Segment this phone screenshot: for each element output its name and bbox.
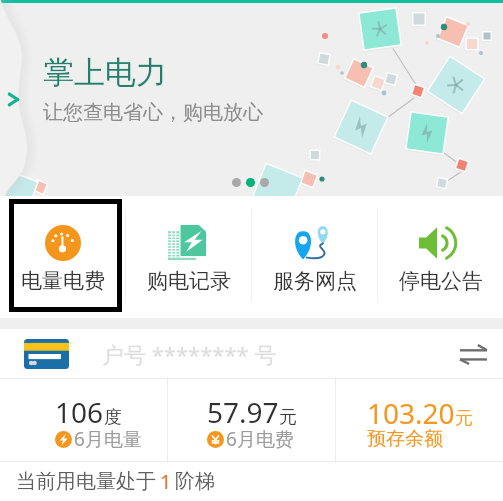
- staticText: 103.20: [367, 394, 455, 432]
- staticText: 让您查电省心，购电放心: [43, 100, 263, 125]
- button[interactable]: 户号 ******** 号: [0, 329, 503, 378]
- staticText: 阶梯: [175, 469, 215, 494]
- staticText: 元: [455, 407, 473, 430]
- staticText: 服务网点: [273, 268, 357, 294]
- staticText: 电量电费: [21, 268, 105, 294]
- button[interactable]: 打开侧边菜单: [0, 3, 44, 196]
- staticText: 57.97: [207, 393, 279, 431]
- button[interactable]: 电量电费: [0, 196, 125, 318]
- staticText: 购电记录: [147, 268, 231, 294]
- staticText: 6月电量: [74, 426, 142, 452]
- staticText: 6月电费: [226, 426, 294, 452]
- staticText: 户号 ******** 号: [102, 339, 277, 369]
- staticText: 1: [160, 468, 172, 495]
- button[interactable]: 57.97: [168, 379, 335, 461]
- button[interactable]: 停电公告: [378, 196, 503, 318]
- staticText: 当前用电量处于: [16, 469, 156, 494]
- button[interactable]: 切换账户: [449, 330, 497, 378]
- button[interactable]: 服务网点: [252, 196, 377, 318]
- button[interactable]: 当前用电量处于: [0, 462, 503, 501]
- staticText: 度: [104, 406, 122, 429]
- button[interactable]: 106: [0, 379, 167, 461]
- staticText: 掌上电力: [43, 53, 167, 92]
- button[interactable]: 103.20: [336, 379, 503, 461]
- button[interactable]: 购电记录: [126, 196, 251, 318]
- staticText: 元: [279, 406, 297, 429]
- staticText: 预存余额: [367, 427, 443, 451]
- staticText: 106: [55, 393, 104, 431]
- staticText: 停电公告: [399, 268, 483, 294]
